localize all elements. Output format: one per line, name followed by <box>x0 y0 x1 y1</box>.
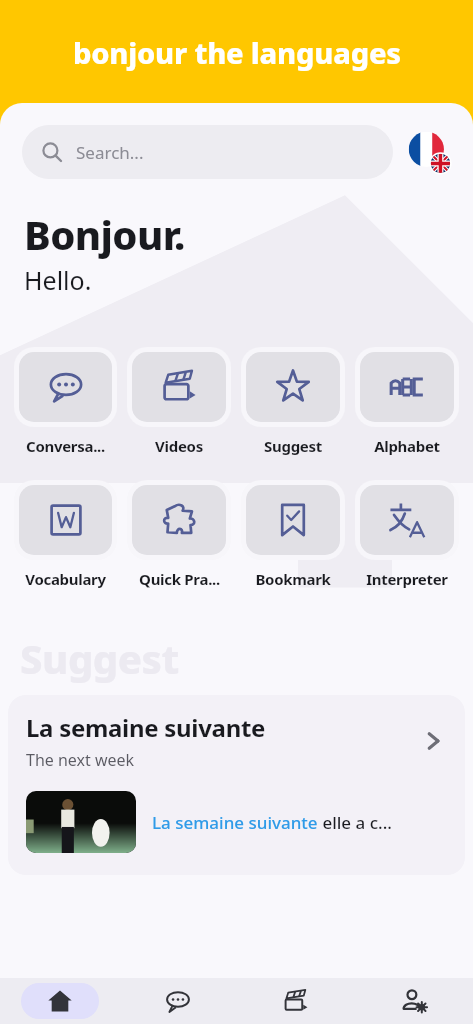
button[interactable]: Alphabet <box>355 347 459 456</box>
staticText: Bonjour. <box>24 207 185 261</box>
staticText: Quick Pra... <box>139 569 220 589</box>
button[interactable]: Home <box>0 978 119 1024</box>
staticText: bonjour the languages <box>73 33 401 72</box>
staticText: Bookmark <box>255 569 331 589</box>
button[interactable]: La semaine suivante <box>8 695 465 875</box>
button[interactable]: Profile settings <box>355 978 473 1024</box>
button[interactable]: Change language <box>407 130 451 174</box>
button[interactable]: Videos <box>237 978 355 1024</box>
button[interactable]: Vocabulary <box>14 480 117 589</box>
staticText: The next week <box>26 749 135 771</box>
button[interactable]: Quick Pra... <box>127 480 231 589</box>
staticText: La semaine suivante <box>26 711 266 744</box>
staticText: elle a c... <box>318 811 392 834</box>
staticText: Suggest <box>20 631 179 685</box>
button[interactable]: Conversation <box>119 978 237 1024</box>
button[interactable]: Interpreter <box>355 480 459 589</box>
button[interactable]: Bookmark <box>241 480 345 589</box>
staticText: Videos <box>155 436 203 456</box>
button[interactable]: Suggest <box>241 347 345 456</box>
staticText: Alphabet <box>374 436 440 456</box>
staticText: Hello. <box>24 263 92 297</box>
button[interactable]: Conversa... <box>14 347 117 456</box>
staticText: Interpreter <box>366 569 448 589</box>
staticText: La semaine suivante <box>152 811 318 834</box>
button[interactable]: Videos <box>127 347 231 456</box>
staticText: Search... <box>76 141 144 164</box>
staticText: Vocabulary <box>25 569 106 589</box>
button[interactable]: Search... <box>22 125 393 179</box>
other: Open <box>421 727 449 755</box>
staticText: Suggest <box>264 436 322 456</box>
staticText: Conversa... <box>26 436 105 456</box>
